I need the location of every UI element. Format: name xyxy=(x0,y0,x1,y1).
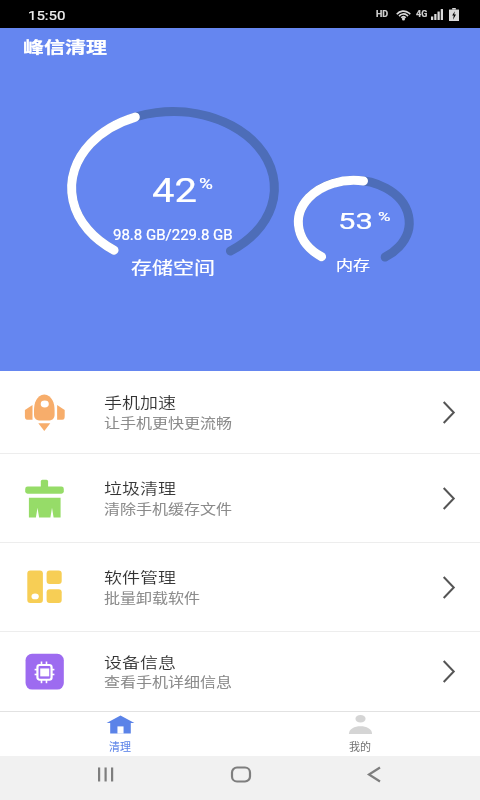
staticText: 存储空间 xyxy=(131,255,215,279)
staticText: 15:50 xyxy=(28,9,66,23)
staticText: 内存 xyxy=(336,255,370,274)
staticText: 我的 xyxy=(349,738,371,754)
button[interactable]: 手机加速 xyxy=(0,371,480,453)
staticText: % xyxy=(199,174,213,192)
staticText: 软件管理 xyxy=(104,567,176,587)
staticText: 42 xyxy=(152,172,197,210)
staticText: 4G xyxy=(416,9,428,20)
staticText: 清理 xyxy=(109,738,131,754)
staticText: % xyxy=(378,209,391,224)
staticText: 查看手机详细信息 xyxy=(104,671,233,690)
staticText: 峰信清理 xyxy=(23,34,107,57)
button[interactable]: 我的 xyxy=(240,712,480,756)
staticText: 98.8 GB/229.8 GB xyxy=(113,226,233,244)
staticText: 垃圾清理 xyxy=(104,478,176,498)
staticText: 手机加速 xyxy=(104,392,176,412)
staticText: 设备信息 xyxy=(104,652,176,672)
button[interactable]: 软件管理 xyxy=(0,543,480,631)
staticText: 批量卸载软件 xyxy=(104,587,201,606)
button[interactable]: 清理 xyxy=(0,712,240,756)
staticText: 53 xyxy=(338,208,373,235)
staticText: HD xyxy=(376,9,389,20)
staticText: 让手机更快更流畅 xyxy=(104,412,233,431)
button[interactable]: 设备信息 xyxy=(0,632,480,711)
staticText: 清除手机缓存文件 xyxy=(104,498,233,517)
button[interactable]: 垃圾清理 xyxy=(0,454,480,542)
